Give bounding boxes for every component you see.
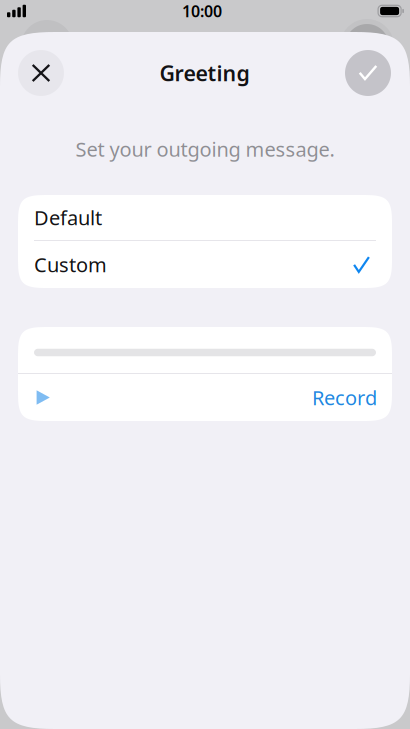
- button[interactable]: Close: [18, 50, 64, 96]
- button[interactable]: Default: [18, 195, 392, 240]
- staticText: Default: [34, 204, 102, 231]
- button[interactable]: Play: [18, 374, 60, 421]
- staticText: Record: [312, 384, 377, 411]
- staticText: Greeting: [159, 59, 249, 87]
- button[interactable]: Custom: [18, 241, 392, 288]
- button[interactable]: Done: [345, 50, 391, 96]
- staticText: Set your outgoing message.: [75, 136, 334, 162]
- staticText: 10:00: [182, 0, 222, 22]
- button[interactable]: Record: [302, 374, 392, 421]
- staticText: Custom: [34, 251, 107, 278]
